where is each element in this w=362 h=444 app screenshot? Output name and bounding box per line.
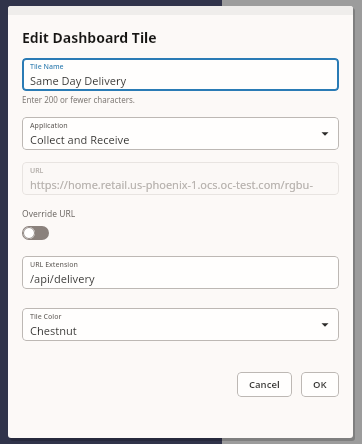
staticText: Cancel (249, 378, 280, 391)
staticText: Chestnut (30, 323, 77, 338)
button[interactable]: URL Extension (22, 256, 339, 289)
staticText: Application (30, 121, 68, 131)
button[interactable]: Application dropdown (22, 117, 339, 150)
staticText: URL (30, 166, 44, 176)
staticText: Tile Name (30, 62, 64, 72)
staticText: https://home.retail.us-phoenix-1.ocs.oc-… (30, 177, 331, 192)
staticText: Override URL (22, 208, 76, 220)
staticText: URL Extension (30, 260, 78, 270)
button[interactable]: Tile Name (22, 58, 339, 91)
button[interactable]: Cancel (237, 372, 292, 397)
staticText: Tile Color (30, 312, 62, 322)
button[interactable]: Override URL toggle (22, 226, 49, 240)
staticText: Edit Dashboard Tile (22, 28, 157, 47)
staticText: Enter 200 or fewer characters. (22, 94, 135, 105)
staticText: /api/delivery (30, 271, 95, 286)
button[interactable]: Tile Color dropdown (22, 308, 339, 341)
button[interactable]: OK (301, 372, 339, 397)
staticText: OK (313, 378, 327, 391)
staticText: Same Day Delivery (30, 73, 127, 88)
button[interactable]: URL (22, 162, 339, 195)
staticText: Collect and Receive (30, 132, 130, 147)
